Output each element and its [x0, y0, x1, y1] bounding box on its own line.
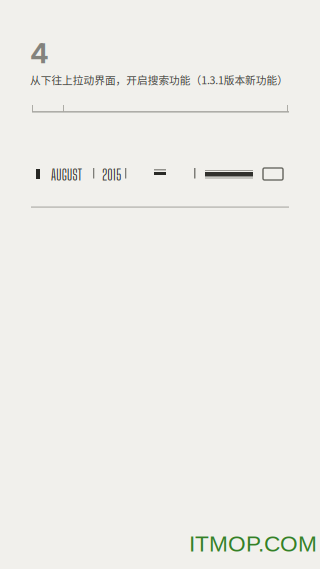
staticText: ITMOP.COM — [189, 531, 317, 556]
staticText: 4 — [30, 36, 49, 70]
staticText: 从下往上拉动界面，开启搜索功能（1.3.1版本新功能） — [30, 72, 288, 87]
staticText: 2015 — [102, 166, 122, 184]
staticText: AUGUST — [51, 166, 82, 184]
